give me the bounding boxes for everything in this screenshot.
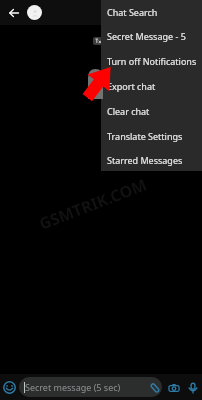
- button[interactable]: Translate: [93, 37, 102, 45]
- button[interactable]: Attach: [147, 380, 162, 395]
- staticText: Secret message (5 sec): [25, 381, 121, 393]
- staticText: GSMTRIK.COM: [36, 173, 150, 235]
- button[interactable]: Clear chat: [101, 98, 202, 123]
- button[interactable]: Chat Search: [101, 0, 202, 23]
- button[interactable]: Turn off Notifications: [101, 48, 202, 73]
- button[interactable]: Secret message (5 sec): [19, 377, 162, 397]
- button[interactable]: Profile: [27, 5, 42, 20]
- staticText: Chat Search: [107, 6, 158, 18]
- staticText: Secret Message - 5: [107, 30, 186, 42]
- button[interactable]: Voice message: [183, 378, 202, 397]
- button[interactable]: Back: [3, 2, 25, 24]
- button[interactable]: Export chat: [101, 73, 202, 98]
- button[interactable]: Translate Settings: [101, 123, 202, 148]
- button[interactable]: Secret Message - 5: [101, 23, 202, 48]
- staticText: Translate Settings: [107, 130, 183, 142]
- staticText: Turn off Notifications: [107, 55, 197, 67]
- staticText: Export chat: [107, 80, 156, 92]
- button[interactable]: Starred Messages: [101, 148, 202, 171]
- staticText: Clear chat: [107, 105, 150, 117]
- staticText: Starred Messages: [107, 154, 183, 166]
- button[interactable]: Emoji: [0, 378, 19, 397]
- button[interactable]: Camera: [164, 378, 183, 397]
